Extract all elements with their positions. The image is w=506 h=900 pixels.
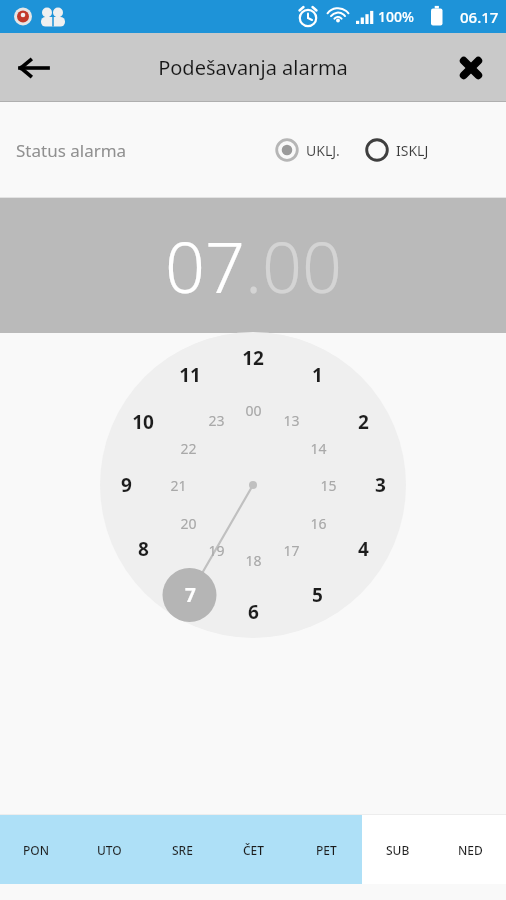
staticText: 06.17	[460, 7, 499, 27]
staticText: 10	[132, 409, 154, 435]
staticText: SUB	[386, 842, 410, 858]
button[interactable]: UKLJ.	[272, 132, 343, 168]
button[interactable]: Back	[6, 40, 62, 96]
staticText: 19	[208, 541, 225, 560]
staticText: 5	[312, 582, 323, 608]
button[interactable]: NED	[434, 815, 506, 884]
staticText: 17	[283, 541, 300, 560]
staticText: 18	[245, 551, 262, 570]
staticText: 13	[283, 411, 300, 430]
button[interactable]: 00	[234, 395, 272, 425]
button[interactable]: Close	[444, 41, 498, 95]
staticText: 100%	[378, 7, 414, 26]
button[interactable]: SUB	[362, 815, 434, 884]
button[interactable]: ISKLJ	[362, 132, 432, 168]
button[interactable]: 8	[124, 534, 162, 564]
staticText: 21	[170, 476, 187, 495]
staticText: 4	[358, 536, 369, 562]
button[interactable]: 7	[171, 580, 209, 610]
staticText: ISKLJ	[396, 141, 429, 160]
staticText: ČET	[243, 842, 265, 858]
staticText: SRE	[172, 842, 193, 858]
staticText: 1	[312, 362, 323, 388]
staticText: 12	[242, 345, 264, 371]
staticText: 15	[320, 476, 337, 495]
button[interactable]: 6	[234, 597, 272, 627]
staticText: 7	[185, 582, 196, 608]
staticText: PET	[316, 842, 337, 858]
staticText: UTO	[97, 842, 122, 858]
button[interactable]: 17	[272, 535, 310, 565]
button[interactable]: 23	[197, 405, 235, 435]
staticText: UKLJ.	[306, 141, 340, 160]
button[interactable]: ČET	[218, 815, 290, 884]
staticText: 00	[245, 401, 262, 420]
staticText: 3	[375, 472, 386, 498]
button[interactable]: 19	[197, 535, 235, 565]
staticText: 6	[248, 599, 259, 625]
button[interactable]: 22	[169, 433, 207, 463]
button[interactable]: 9	[107, 470, 145, 500]
button[interactable]: 14	[299, 433, 337, 463]
staticText: 23	[208, 411, 225, 430]
button[interactable]: 20	[169, 508, 207, 538]
staticText: 16	[310, 514, 327, 533]
staticText: Status alarma	[16, 139, 127, 162]
button[interactable]: 4	[344, 534, 382, 564]
staticText: 22	[180, 439, 197, 458]
button[interactable]: UTO	[73, 815, 146, 884]
staticText: 07.00	[165, 218, 342, 313]
button[interactable]: 07.00	[0, 198, 506, 333]
button[interactable]: 2	[344, 407, 382, 437]
button[interactable]: 21	[159, 470, 197, 500]
button[interactable]: 3	[361, 470, 399, 500]
staticText: Podešavanja alarma	[158, 54, 348, 81]
button[interactable]: SRE	[146, 815, 218, 884]
button[interactable]: PET	[290, 815, 362, 884]
staticText: 9	[121, 472, 132, 498]
staticText: 14	[310, 439, 327, 458]
staticText: 11	[179, 362, 201, 388]
button[interactable]: PON	[0, 815, 73, 884]
button[interactable]: 16	[299, 508, 337, 538]
staticText: PON	[23, 842, 50, 858]
button[interactable]: 11	[171, 360, 209, 390]
button[interactable]: 5	[298, 580, 336, 610]
button[interactable]: 13	[272, 405, 310, 435]
button[interactable]: 12	[234, 343, 272, 373]
button[interactable]: 15	[309, 470, 347, 500]
button[interactable]: 1	[298, 360, 336, 390]
staticText: NED	[458, 842, 483, 858]
staticText: 20	[180, 514, 197, 533]
staticText: 2	[358, 409, 369, 435]
staticText: 8	[138, 536, 149, 562]
button[interactable]: 10	[124, 407, 162, 437]
button[interactable]: 18	[234, 545, 272, 575]
